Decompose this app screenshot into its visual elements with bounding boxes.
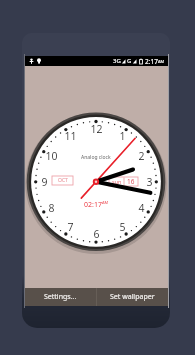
staticText: AM [158, 59, 165, 64]
staticText: 7 [67, 220, 74, 234]
button[interactable]: Set wallpaper [97, 288, 168, 306]
button[interactable]: Settings... [25, 288, 96, 306]
staticText: 6 [93, 227, 100, 241]
staticText: OCT [58, 177, 68, 184]
staticText: 12 [90, 122, 103, 136]
staticText: 3G [113, 57, 121, 65]
staticText: 2:17 [145, 57, 158, 66]
staticText: 2 [138, 149, 145, 163]
staticText: 4 [138, 201, 145, 215]
staticText: Set wallpaper [110, 292, 155, 302]
staticText: sun [112, 178, 122, 185]
staticText: 5 [119, 220, 126, 234]
staticText: Analog clock [81, 154, 111, 161]
staticText: Settings... [44, 292, 77, 302]
staticText: 02:17 [84, 200, 102, 210]
staticText: 1 [119, 129, 126, 143]
staticText: AM [102, 200, 109, 205]
staticText: 9 [41, 175, 48, 189]
staticText: 16 [127, 177, 135, 186]
staticText: 8 [48, 201, 55, 215]
staticText: 3 [146, 175, 153, 189]
staticText: 10 [45, 149, 58, 163]
staticText: 11 [64, 129, 77, 143]
staticText: G [127, 57, 132, 65]
